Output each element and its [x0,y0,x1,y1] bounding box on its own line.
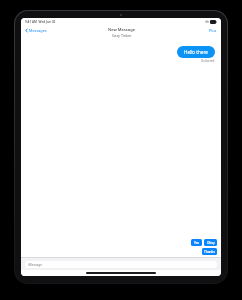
staticText: Yes [194,241,200,245]
button[interactable]: Hello there [177,46,215,58]
staticText: Plus [209,28,217,33]
staticText: Thanks [204,250,215,254]
button[interactable]: Messages [24,27,48,34]
staticText: Gary Tinker [112,33,132,38]
button[interactable]: iMessage [25,261,217,268]
button[interactable]: Add contact [208,27,218,34]
button[interactable]: Yes [191,239,202,246]
staticText: Okay [207,241,215,245]
button[interactable]: Okay [204,239,217,246]
staticText: Messages [29,28,47,33]
staticText: 9:41 AM Wed Jun 30 [25,20,56,24]
staticText: iMessage [28,263,43,267]
button[interactable]: Thanks [202,248,217,255]
staticText: New Message [108,27,135,32]
staticText: Hello there [184,49,208,55]
staticText: Delivered [201,59,215,63]
